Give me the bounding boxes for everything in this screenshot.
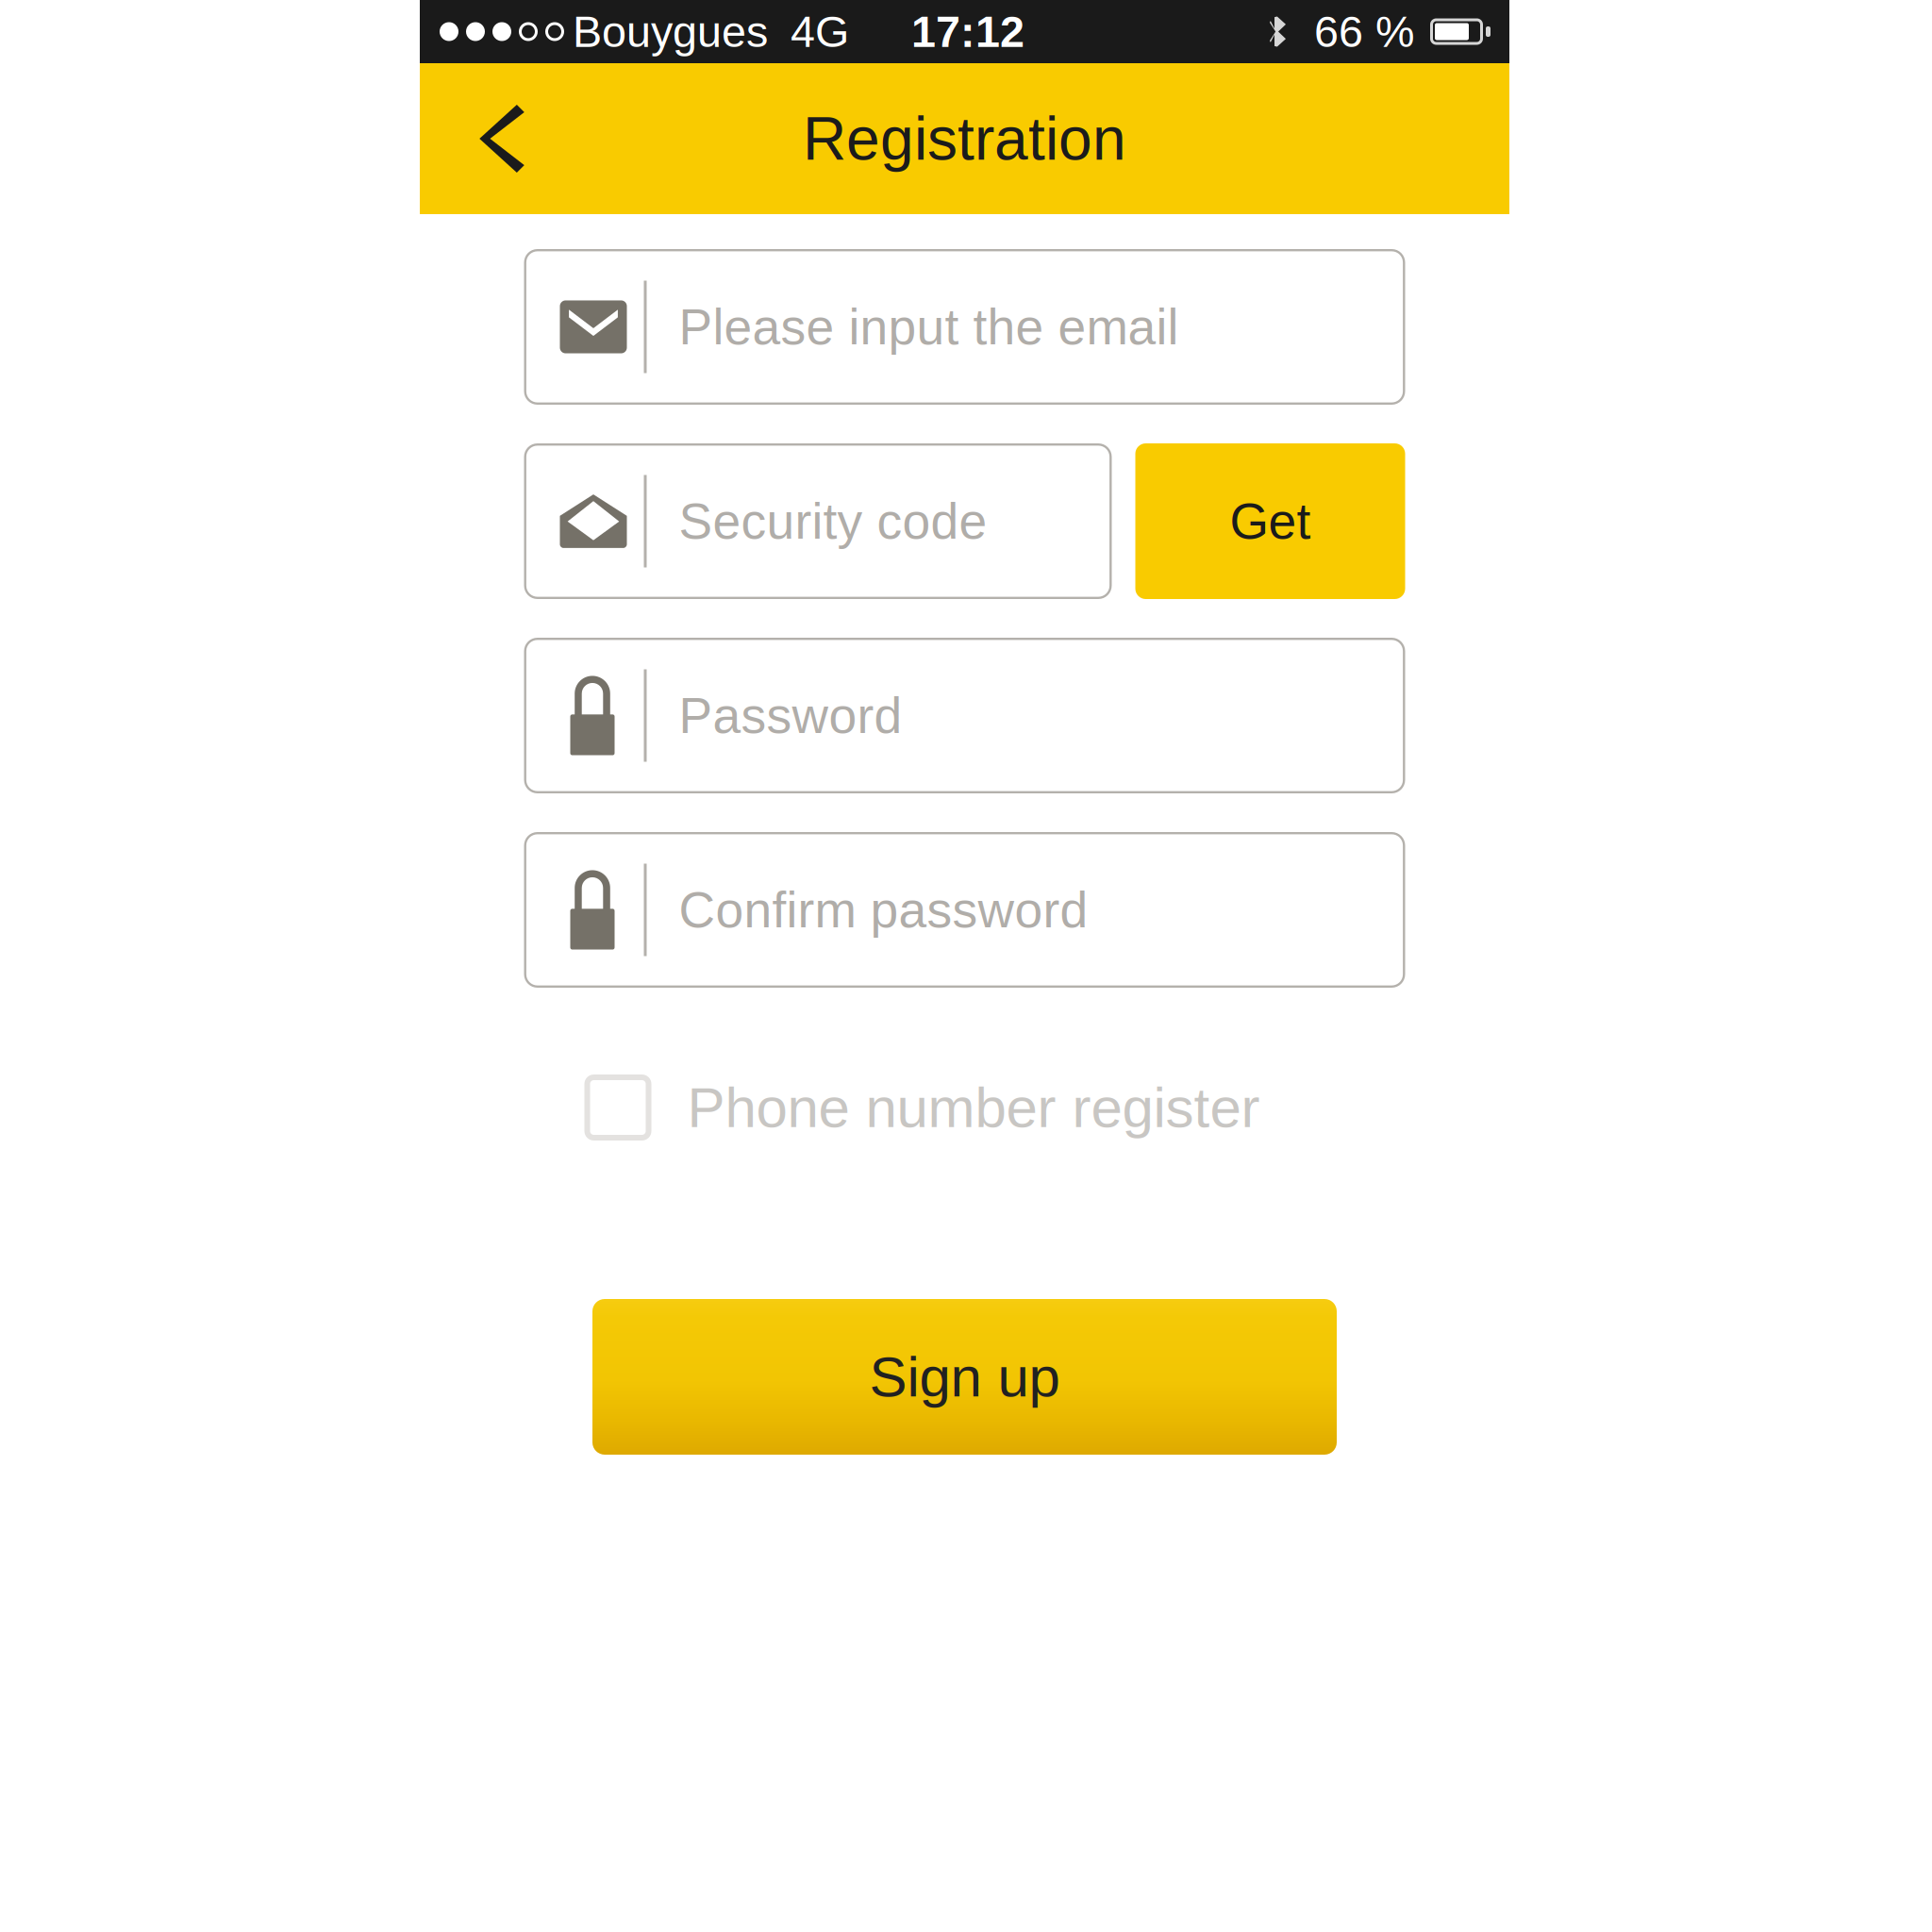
- button[interactable]: Phone number register: [524, 1074, 1405, 1141]
- staticText: Confirm password: [679, 882, 1088, 938]
- staticText: 17:12: [911, 7, 1024, 56]
- staticText: Bouygues: [573, 7, 768, 56]
- staticText: 66 %: [1314, 7, 1414, 56]
- button[interactable]: Sign up: [592, 1299, 1337, 1455]
- staticText: Registration: [803, 105, 1126, 172]
- staticText: 4G: [791, 7, 849, 56]
- staticText: Get: [1230, 493, 1311, 549]
- staticText: Phone number register: [687, 1076, 1260, 1139]
- staticText: Password: [679, 687, 902, 744]
- staticText: Security code: [679, 493, 987, 549]
- button[interactable]: Back: [420, 63, 584, 214]
- staticText: Sign up: [869, 1345, 1060, 1408]
- button[interactable]: Get: [1135, 443, 1405, 599]
- staticText: Please input the email: [679, 299, 1179, 355]
